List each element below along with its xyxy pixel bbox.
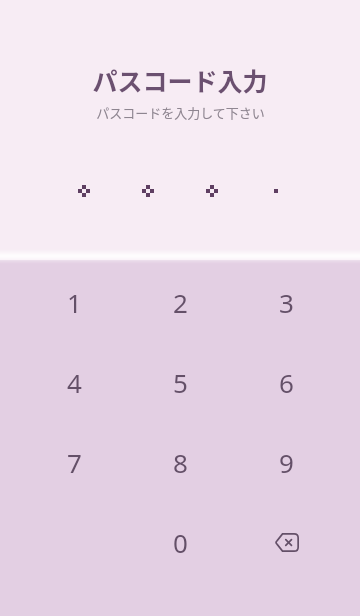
staticText: 0 <box>173 525 188 560</box>
staticText: パスコード入力 <box>92 62 268 98</box>
button[interactable]: 1 <box>21 262 127 342</box>
button[interactable]: 4 <box>21 342 127 422</box>
button[interactable]: 3 <box>233 262 339 342</box>
other: Backspace <box>266 522 306 562</box>
staticText: 8 <box>173 445 188 480</box>
staticText: パスコードを入力して下さい <box>96 103 265 122</box>
button[interactable]: 0 <box>127 502 233 582</box>
staticText: 3 <box>279 285 294 320</box>
staticText: 9 <box>279 445 294 480</box>
button[interactable]: Backspace <box>233 502 339 582</box>
staticText: 1 <box>67 285 82 320</box>
button[interactable]: 8 <box>127 422 233 502</box>
staticText: 2 <box>173 285 188 320</box>
button[interactable]: 2 <box>127 262 233 342</box>
staticText: 5 <box>173 365 188 400</box>
button[interactable]: 7 <box>21 422 127 502</box>
staticText: 6 <box>279 365 294 400</box>
staticText: 4 <box>67 365 82 400</box>
staticText: 7 <box>67 445 82 480</box>
button[interactable]: 6 <box>233 342 339 422</box>
button[interactable]: 9 <box>233 422 339 502</box>
button[interactable]: 5 <box>127 342 233 422</box>
